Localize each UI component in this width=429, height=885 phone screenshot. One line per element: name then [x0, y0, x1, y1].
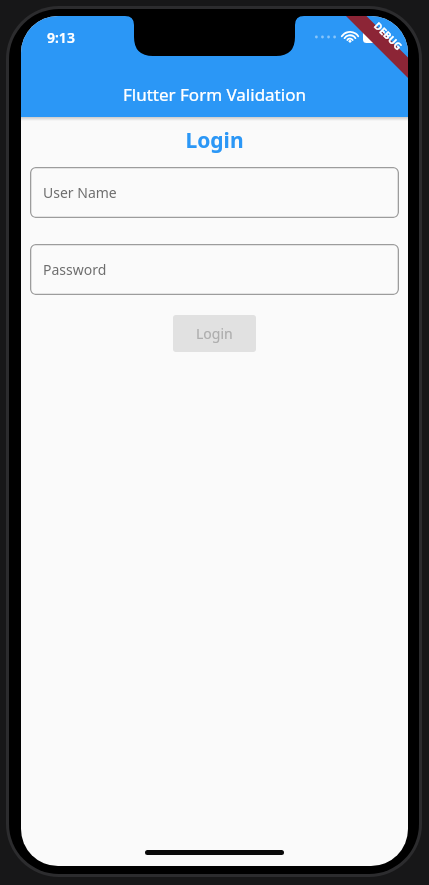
- staticText: Login: [196, 324, 233, 343]
- staticText: Login: [21, 126, 408, 155]
- button[interactable]: User Name: [30, 167, 399, 218]
- staticText: Password: [43, 260, 107, 279]
- staticText: Flutter Form Validation: [123, 83, 306, 106]
- button[interactable]: Password: [30, 244, 399, 295]
- other: Status: signal, wifi, battery: [315, 31, 388, 43]
- staticText: DEBUG: [371, 19, 406, 53]
- staticText: User Name: [43, 183, 117, 202]
- button[interactable]: Login: [173, 315, 256, 352]
- staticText: 9:13: [47, 28, 75, 47]
